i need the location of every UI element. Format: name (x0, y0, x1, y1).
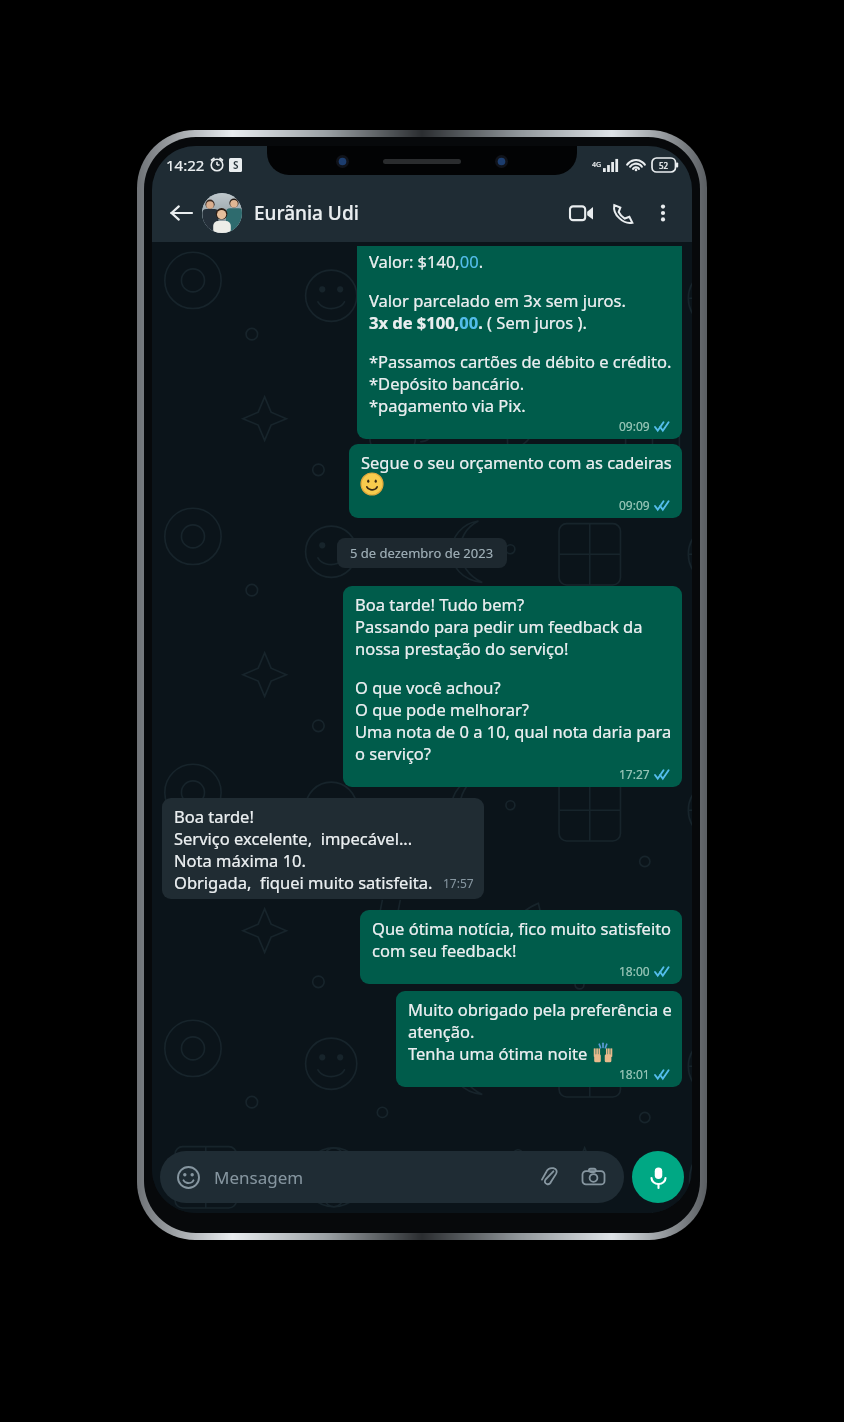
button[interactable]: Boa tarde! Tudo bem? (343, 586, 682, 787)
staticText: nossa prestação do serviço! (355, 637, 569, 659)
staticText: Nota máxima 10. (174, 849, 306, 871)
staticText: Valor parcelado em 3x sem juros. (369, 289, 626, 311)
staticText: o serviço? (355, 742, 431, 764)
button[interactable]: Back (162, 194, 200, 232)
staticText: Eurãnia Udi (254, 200, 359, 226)
staticText: com seu feedback! (372, 939, 517, 961)
button[interactable]: Que ótima notícia, fico muito satisfeito (360, 910, 682, 984)
staticText: 14:22 (166, 155, 205, 175)
staticText: 17:57 (443, 875, 474, 891)
staticText: Valor: $140,00. (369, 250, 484, 272)
button[interactable]: More options (644, 194, 682, 232)
staticText: Passando para pedir um feedback da (355, 615, 643, 637)
staticText: O que pode melhorar? (355, 698, 529, 720)
button[interactable]: Video call (560, 192, 602, 234)
button[interactable]: Boa tarde! (162, 798, 484, 899)
staticText: 09:09 (619, 497, 650, 513)
button[interactable]: Voice message (632, 1151, 684, 1203)
staticText: atenção. (408, 1020, 475, 1042)
staticText: 3x de $100,00. ( Sem juros ). (369, 311, 587, 333)
staticText: Muito obrigado pela preferência e (408, 998, 672, 1020)
staticText: Que ótima notícia, fico muito satisfeito (372, 917, 672, 939)
staticText: 18:01 (619, 1066, 650, 1082)
staticText: 17:27 (619, 766, 650, 782)
button[interactable]: Valor: $140,00. (357, 246, 682, 439)
staticText: Boa tarde! Tudo bem? (355, 593, 525, 615)
button[interactable]: Camera (576, 1160, 610, 1194)
staticText: 09:09 (619, 418, 650, 434)
button[interactable]: Eurãnia Udi (254, 200, 560, 226)
staticText: S (233, 158, 239, 172)
staticText: 5 de dezembro de 2023 (350, 544, 494, 562)
button[interactable]: Emoji (160, 1151, 624, 1203)
staticText: 4G (592, 160, 602, 170)
staticText: Tenha uma ótima noite (408, 1042, 592, 1064)
button[interactable]: Emoji (174, 1163, 202, 1191)
staticText: Mensagem (214, 1166, 532, 1189)
staticText: Uma nota de 0 a 10, qual nota daria para (355, 720, 672, 742)
button[interactable]: Muito obrigado pela preferência e (396, 991, 682, 1087)
button[interactable]: Segue o seu orçamento com as cadeiras (349, 444, 682, 518)
button[interactable]: Call (602, 192, 644, 234)
staticText: Boa tarde! (174, 805, 254, 827)
staticText: Serviço excelente, impecável... (174, 827, 413, 849)
staticText: *pagamento via Pix. (369, 394, 526, 416)
staticText: Segue o seu orçamento com as cadeiras (361, 451, 672, 473)
staticText: *Depósito bancário. (369, 372, 525, 394)
staticText: 52 (659, 160, 669, 171)
staticText: *Passamos cartões de débito e crédito. (369, 350, 672, 372)
button[interactable]: Profile photo (202, 193, 242, 233)
staticText: 18:00 (619, 963, 650, 979)
staticText: O que você achou? (355, 676, 501, 698)
staticText: Obrigada, fiquei muito satisfeita. (174, 871, 433, 893)
button[interactable]: Attach (532, 1160, 566, 1194)
